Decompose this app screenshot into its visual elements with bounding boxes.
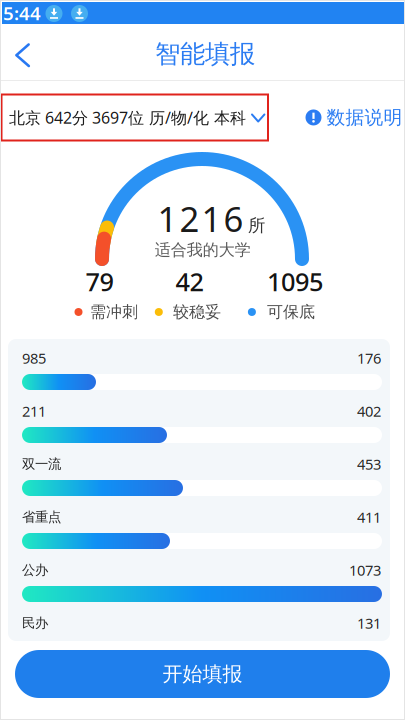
staticText: 智能填报	[155, 38, 255, 69]
staticText: 79	[85, 265, 113, 298]
staticText: 131	[357, 613, 381, 633]
staticText: 较稳妥	[173, 302, 221, 322]
staticText: 民办	[22, 615, 48, 631]
staticText: 453	[357, 454, 381, 474]
staticText: 双一流	[22, 456, 61, 472]
button[interactable]: 数据说明	[305, 106, 402, 129]
staticText: 省重点	[22, 509, 61, 525]
button[interactable]	[12, 41, 34, 69]
staticText: 所	[248, 215, 265, 236]
staticText: 985	[22, 348, 46, 368]
staticText: 开始填报	[162, 662, 242, 686]
staticText: 1095	[267, 265, 323, 298]
staticText: 适合我的大学	[155, 240, 251, 260]
button[interactable]: 开始填报	[15, 650, 390, 698]
staticText: 北京 642分 3697位 历/物/化 本科	[9, 107, 246, 128]
staticText: 1073	[349, 560, 381, 580]
staticText: 数据说明	[326, 106, 402, 129]
staticText: 402	[357, 401, 381, 421]
staticText: 公办	[22, 562, 48, 578]
staticText: 176	[357, 348, 381, 368]
staticText: 211	[22, 401, 46, 421]
staticText: 42	[175, 265, 203, 298]
button[interactable]: 北京 642分 3697位 历/物/化 本科	[9, 105, 265, 129]
staticText: 411	[357, 507, 381, 527]
staticText: 需冲刺	[90, 302, 138, 322]
staticText: 可保底	[267, 302, 315, 322]
staticText: 5:44	[3, 1, 41, 25]
staticText: 1216	[157, 195, 243, 241]
